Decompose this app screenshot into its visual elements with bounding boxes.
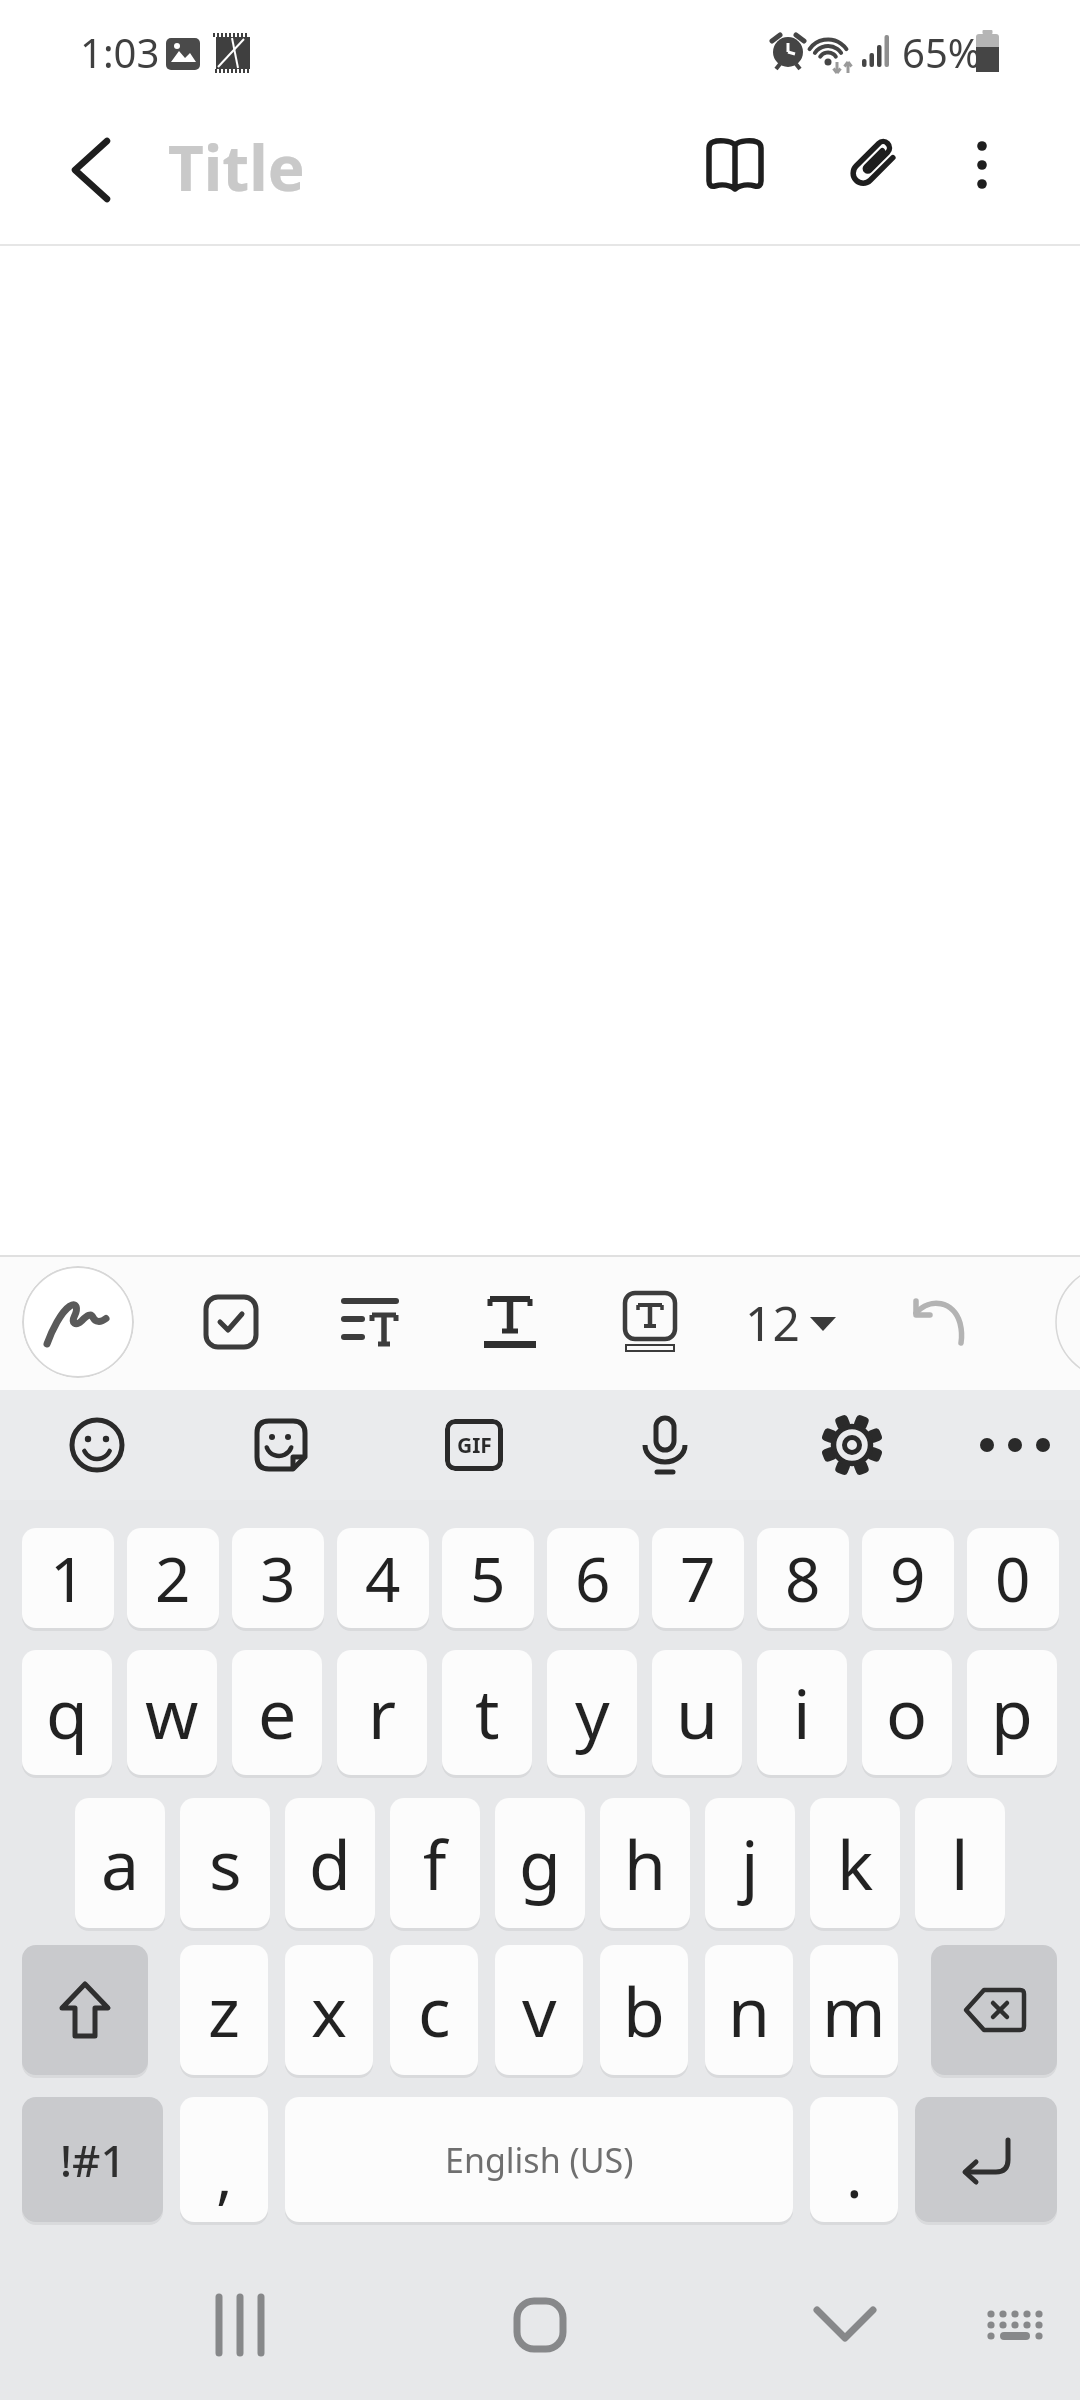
- staticText: e: [258, 1666, 297, 1759]
- button[interactable]: [47, 1395, 147, 1495]
- button[interactable]: [322, 1274, 418, 1370]
- button[interactable]: [183, 1274, 279, 1370]
- staticText: s: [209, 1817, 242, 1910]
- button[interactable]: [40, 120, 140, 220]
- staticText: 6: [575, 1536, 611, 1620]
- button[interactable]: [822, 115, 922, 215]
- staticText: d: [309, 1817, 351, 1910]
- button[interactable]: [22, 1266, 134, 1378]
- staticText: j: [741, 1817, 759, 1910]
- button[interactable]: m: [810, 1945, 898, 2075]
- staticText: u: [676, 1666, 719, 1759]
- button[interactable]: w: [127, 1650, 217, 1775]
- button[interactable]: q: [22, 1650, 112, 1775]
- staticText: t: [475, 1666, 500, 1759]
- button[interactable]: [915, 2097, 1057, 2222]
- button[interactable]: n: [705, 1945, 793, 2075]
- staticText: 4: [365, 1536, 401, 1620]
- button[interactable]: v: [495, 1945, 583, 2075]
- button[interactable]: x: [285, 1945, 373, 2075]
- button[interactable]: [231, 1395, 331, 1495]
- staticText: 8: [785, 1536, 821, 1620]
- button[interactable]: 7: [652, 1528, 744, 1628]
- staticText: x: [311, 1964, 347, 2057]
- staticText: k: [837, 1817, 874, 1910]
- button[interactable]: l: [915, 1798, 1005, 1928]
- button[interactable]: p: [967, 1650, 1057, 1775]
- button[interactable]: !#1: [22, 2097, 163, 2222]
- button[interactable]: [890, 1274, 986, 1370]
- button[interactable]: e: [232, 1650, 322, 1775]
- staticText: 3: [260, 1536, 296, 1620]
- button[interactable]: [795, 2275, 895, 2375]
- button[interactable]: j: [705, 1798, 795, 1928]
- button[interactable]: r: [337, 1650, 427, 1775]
- button[interactable]: 8: [757, 1528, 849, 1628]
- button[interactable]: [490, 2275, 590, 2375]
- button[interactable]: [931, 1945, 1057, 2075]
- button[interactable]: i: [757, 1650, 847, 1775]
- button[interactable]: ,: [180, 2097, 268, 2222]
- button[interactable]: [965, 2280, 1065, 2370]
- button[interactable]: f: [390, 1798, 480, 1928]
- staticText: y: [575, 1666, 610, 1759]
- button[interactable]: u: [652, 1650, 742, 1775]
- button[interactable]: GIF: [424, 1395, 524, 1495]
- button[interactable]: [932, 115, 1032, 215]
- button[interactable]: English (US): [285, 2097, 793, 2222]
- staticText: 9: [890, 1536, 926, 1620]
- button[interactable]: k: [810, 1798, 900, 1928]
- button[interactable]: [190, 2275, 290, 2375]
- staticText: f: [423, 1817, 447, 1910]
- staticText: o: [886, 1666, 928, 1759]
- staticText: 65%: [902, 25, 981, 79]
- button[interactable]: 3: [232, 1528, 324, 1628]
- button[interactable]: 5: [442, 1528, 534, 1628]
- staticText: l: [951, 1817, 969, 1910]
- button[interactable]: z: [180, 1945, 268, 2075]
- staticText: 5: [470, 1536, 506, 1620]
- staticText: 12: [745, 1290, 800, 1355]
- staticText: .: [846, 2132, 863, 2216]
- staticText: c: [418, 1964, 451, 2057]
- button[interactable]: [462, 1274, 558, 1370]
- button[interactable]: a: [75, 1798, 165, 1928]
- staticText: i: [793, 1666, 811, 1759]
- staticText: 2: [155, 1536, 191, 1620]
- button[interactable]: y: [547, 1650, 637, 1775]
- button[interactable]: 2: [127, 1528, 219, 1628]
- button[interactable]: [965, 1395, 1065, 1495]
- button[interactable]: 4: [337, 1528, 429, 1628]
- button[interactable]: [602, 1274, 698, 1370]
- button[interactable]: [22, 1945, 148, 2075]
- button[interactable]: [615, 1395, 715, 1495]
- staticText: m: [822, 1964, 886, 2057]
- button[interactable]: 9: [862, 1528, 954, 1628]
- button[interactable]: 12: [730, 1274, 850, 1370]
- button[interactable]: t: [442, 1650, 532, 1775]
- staticText: v: [522, 1964, 557, 2057]
- staticText: 1: [50, 1536, 86, 1620]
- staticText: b: [623, 1964, 665, 2057]
- button[interactable]: c: [390, 1945, 478, 2075]
- button[interactable]: g: [495, 1798, 585, 1928]
- button[interactable]: 1: [22, 1528, 114, 1628]
- button[interactable]: [685, 115, 785, 215]
- staticText: z: [208, 1964, 240, 2057]
- staticText: GIF: [457, 1431, 492, 1460]
- staticText: a: [101, 1817, 140, 1910]
- button[interactable]: h: [600, 1798, 690, 1928]
- button[interactable]: b: [600, 1945, 688, 2075]
- button[interactable]: [802, 1395, 902, 1495]
- button[interactable]: .: [810, 2097, 898, 2222]
- button[interactable]: s: [180, 1798, 270, 1928]
- staticText: r: [368, 1666, 397, 1759]
- button[interactable]: 6: [547, 1528, 639, 1628]
- staticText: 0: [995, 1536, 1031, 1620]
- button[interactable]: 0: [967, 1528, 1059, 1628]
- button[interactable]: o: [862, 1650, 952, 1775]
- staticText: English (US): [445, 2137, 634, 2183]
- button[interactable]: d: [285, 1798, 375, 1928]
- staticText: w: [145, 1666, 199, 1759]
- staticText: h: [624, 1817, 667, 1910]
